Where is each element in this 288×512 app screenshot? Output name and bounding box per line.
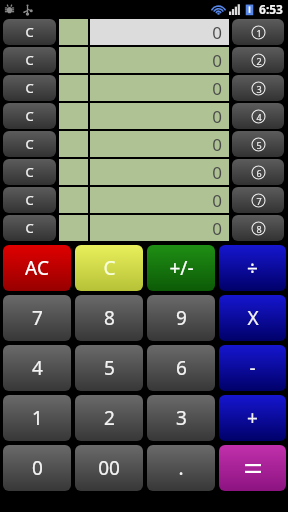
staticText: 2 bbox=[104, 405, 115, 431]
button[interactable]: Memory slot 3 bbox=[232, 75, 284, 101]
button[interactable]: Value field 3 bbox=[90, 75, 229, 101]
button[interactable]: C bbox=[3, 131, 56, 157]
staticText: AC bbox=[25, 255, 49, 281]
button[interactable]: C bbox=[3, 159, 56, 185]
button[interactable]: C bbox=[3, 19, 56, 45]
staticText: +/- bbox=[169, 255, 194, 281]
staticText: 5 bbox=[104, 355, 115, 381]
button[interactable]: Value field 7 bbox=[90, 187, 229, 213]
button[interactable]: Value field 2 bbox=[90, 47, 229, 73]
staticText: 0 bbox=[212, 161, 222, 184]
button[interactable]: C bbox=[3, 47, 56, 73]
button[interactable]: Decimal point bbox=[147, 445, 215, 491]
button[interactable]: Multiply bbox=[219, 295, 286, 341]
button[interactable]: Memory slot 2 bbox=[232, 47, 284, 73]
button[interactable]: +/- bbox=[147, 245, 215, 291]
staticText: C bbox=[25, 191, 34, 209]
button[interactable]: C bbox=[75, 245, 143, 291]
staticText: 0 bbox=[212, 105, 222, 128]
staticText: 1 bbox=[32, 405, 43, 431]
button[interactable]: 8 bbox=[75, 295, 143, 341]
staticText: 9 bbox=[176, 305, 187, 331]
button[interactable]: Value field 4 bbox=[90, 103, 229, 129]
button[interactable]: Value field 6 bbox=[90, 159, 229, 185]
button[interactable]: Memory slot 6 bbox=[232, 159, 284, 185]
button[interactable]: AC bbox=[3, 245, 71, 291]
button[interactable]: Subtract bbox=[219, 345, 286, 391]
staticText: - bbox=[249, 355, 256, 381]
staticText: 6 bbox=[176, 355, 187, 381]
button[interactable]: Divide bbox=[219, 245, 286, 291]
button[interactable]: Memory slot 5 bbox=[232, 131, 284, 157]
staticText: 6 bbox=[256, 167, 262, 179]
button[interactable]: 00 bbox=[75, 445, 143, 491]
staticText: 4 bbox=[256, 111, 262, 123]
staticText: C bbox=[25, 219, 34, 237]
staticText: 8 bbox=[104, 305, 115, 331]
button[interactable]: 5 bbox=[75, 345, 143, 391]
staticText: 8 bbox=[256, 223, 262, 235]
staticText: C bbox=[25, 135, 34, 153]
button[interactable]: Memory slot 7 bbox=[232, 187, 284, 213]
staticText: C bbox=[25, 23, 34, 41]
staticText: . bbox=[178, 455, 184, 481]
staticText: 1 bbox=[256, 27, 262, 39]
staticText: 7 bbox=[32, 305, 43, 331]
staticText: 0 bbox=[212, 77, 222, 100]
staticText: ÷ bbox=[247, 255, 258, 281]
button[interactable]: Value field 5 bbox=[90, 131, 229, 157]
button[interactable]: 3 bbox=[147, 395, 215, 441]
staticText: 3 bbox=[176, 405, 187, 431]
staticText: 0 bbox=[212, 21, 222, 44]
staticText: C bbox=[25, 163, 34, 181]
button[interactable]: Value field 8 bbox=[90, 215, 229, 241]
button[interactable]: 1 bbox=[3, 395, 71, 441]
button[interactable]: 2 bbox=[75, 395, 143, 441]
staticText: C bbox=[25, 107, 34, 125]
button[interactable]: Value field 1 bbox=[90, 19, 229, 45]
button[interactable]: 4 bbox=[3, 345, 71, 391]
staticText: + bbox=[247, 405, 258, 431]
button[interactable]: 0 bbox=[3, 445, 71, 491]
button[interactable]: 6 bbox=[147, 345, 215, 391]
button[interactable]: Equals bbox=[219, 445, 286, 491]
button[interactable]: 9 bbox=[147, 295, 215, 341]
staticText: C bbox=[103, 255, 116, 281]
staticText: 0 bbox=[212, 217, 222, 240]
button[interactable]: C bbox=[3, 75, 56, 101]
staticText: 7 bbox=[256, 195, 262, 207]
staticText: 2 bbox=[256, 55, 262, 67]
staticText: 00 bbox=[98, 455, 120, 481]
button[interactable]: Memory slot 8 bbox=[232, 215, 284, 241]
staticText: C bbox=[25, 51, 34, 69]
staticText: 3 bbox=[256, 83, 262, 95]
button[interactable]: 7 bbox=[3, 295, 71, 341]
button[interactable]: C bbox=[3, 187, 56, 213]
staticText: 0 bbox=[212, 133, 222, 156]
button[interactable]: Memory slot 4 bbox=[232, 103, 284, 129]
staticText: 0 bbox=[32, 455, 43, 481]
staticText: 4 bbox=[32, 355, 43, 381]
staticText: X bbox=[247, 305, 259, 331]
button[interactable]: Add bbox=[219, 395, 286, 441]
staticText: 0 bbox=[212, 49, 222, 72]
staticText: C bbox=[25, 79, 34, 97]
button[interactable]: Memory slot 1 bbox=[232, 19, 284, 45]
staticText: 5 bbox=[256, 139, 262, 151]
staticText: 6:53 bbox=[259, 1, 283, 17]
button[interactable]: C bbox=[3, 103, 56, 129]
staticText: 0 bbox=[212, 189, 222, 212]
button[interactable]: C bbox=[3, 215, 56, 241]
